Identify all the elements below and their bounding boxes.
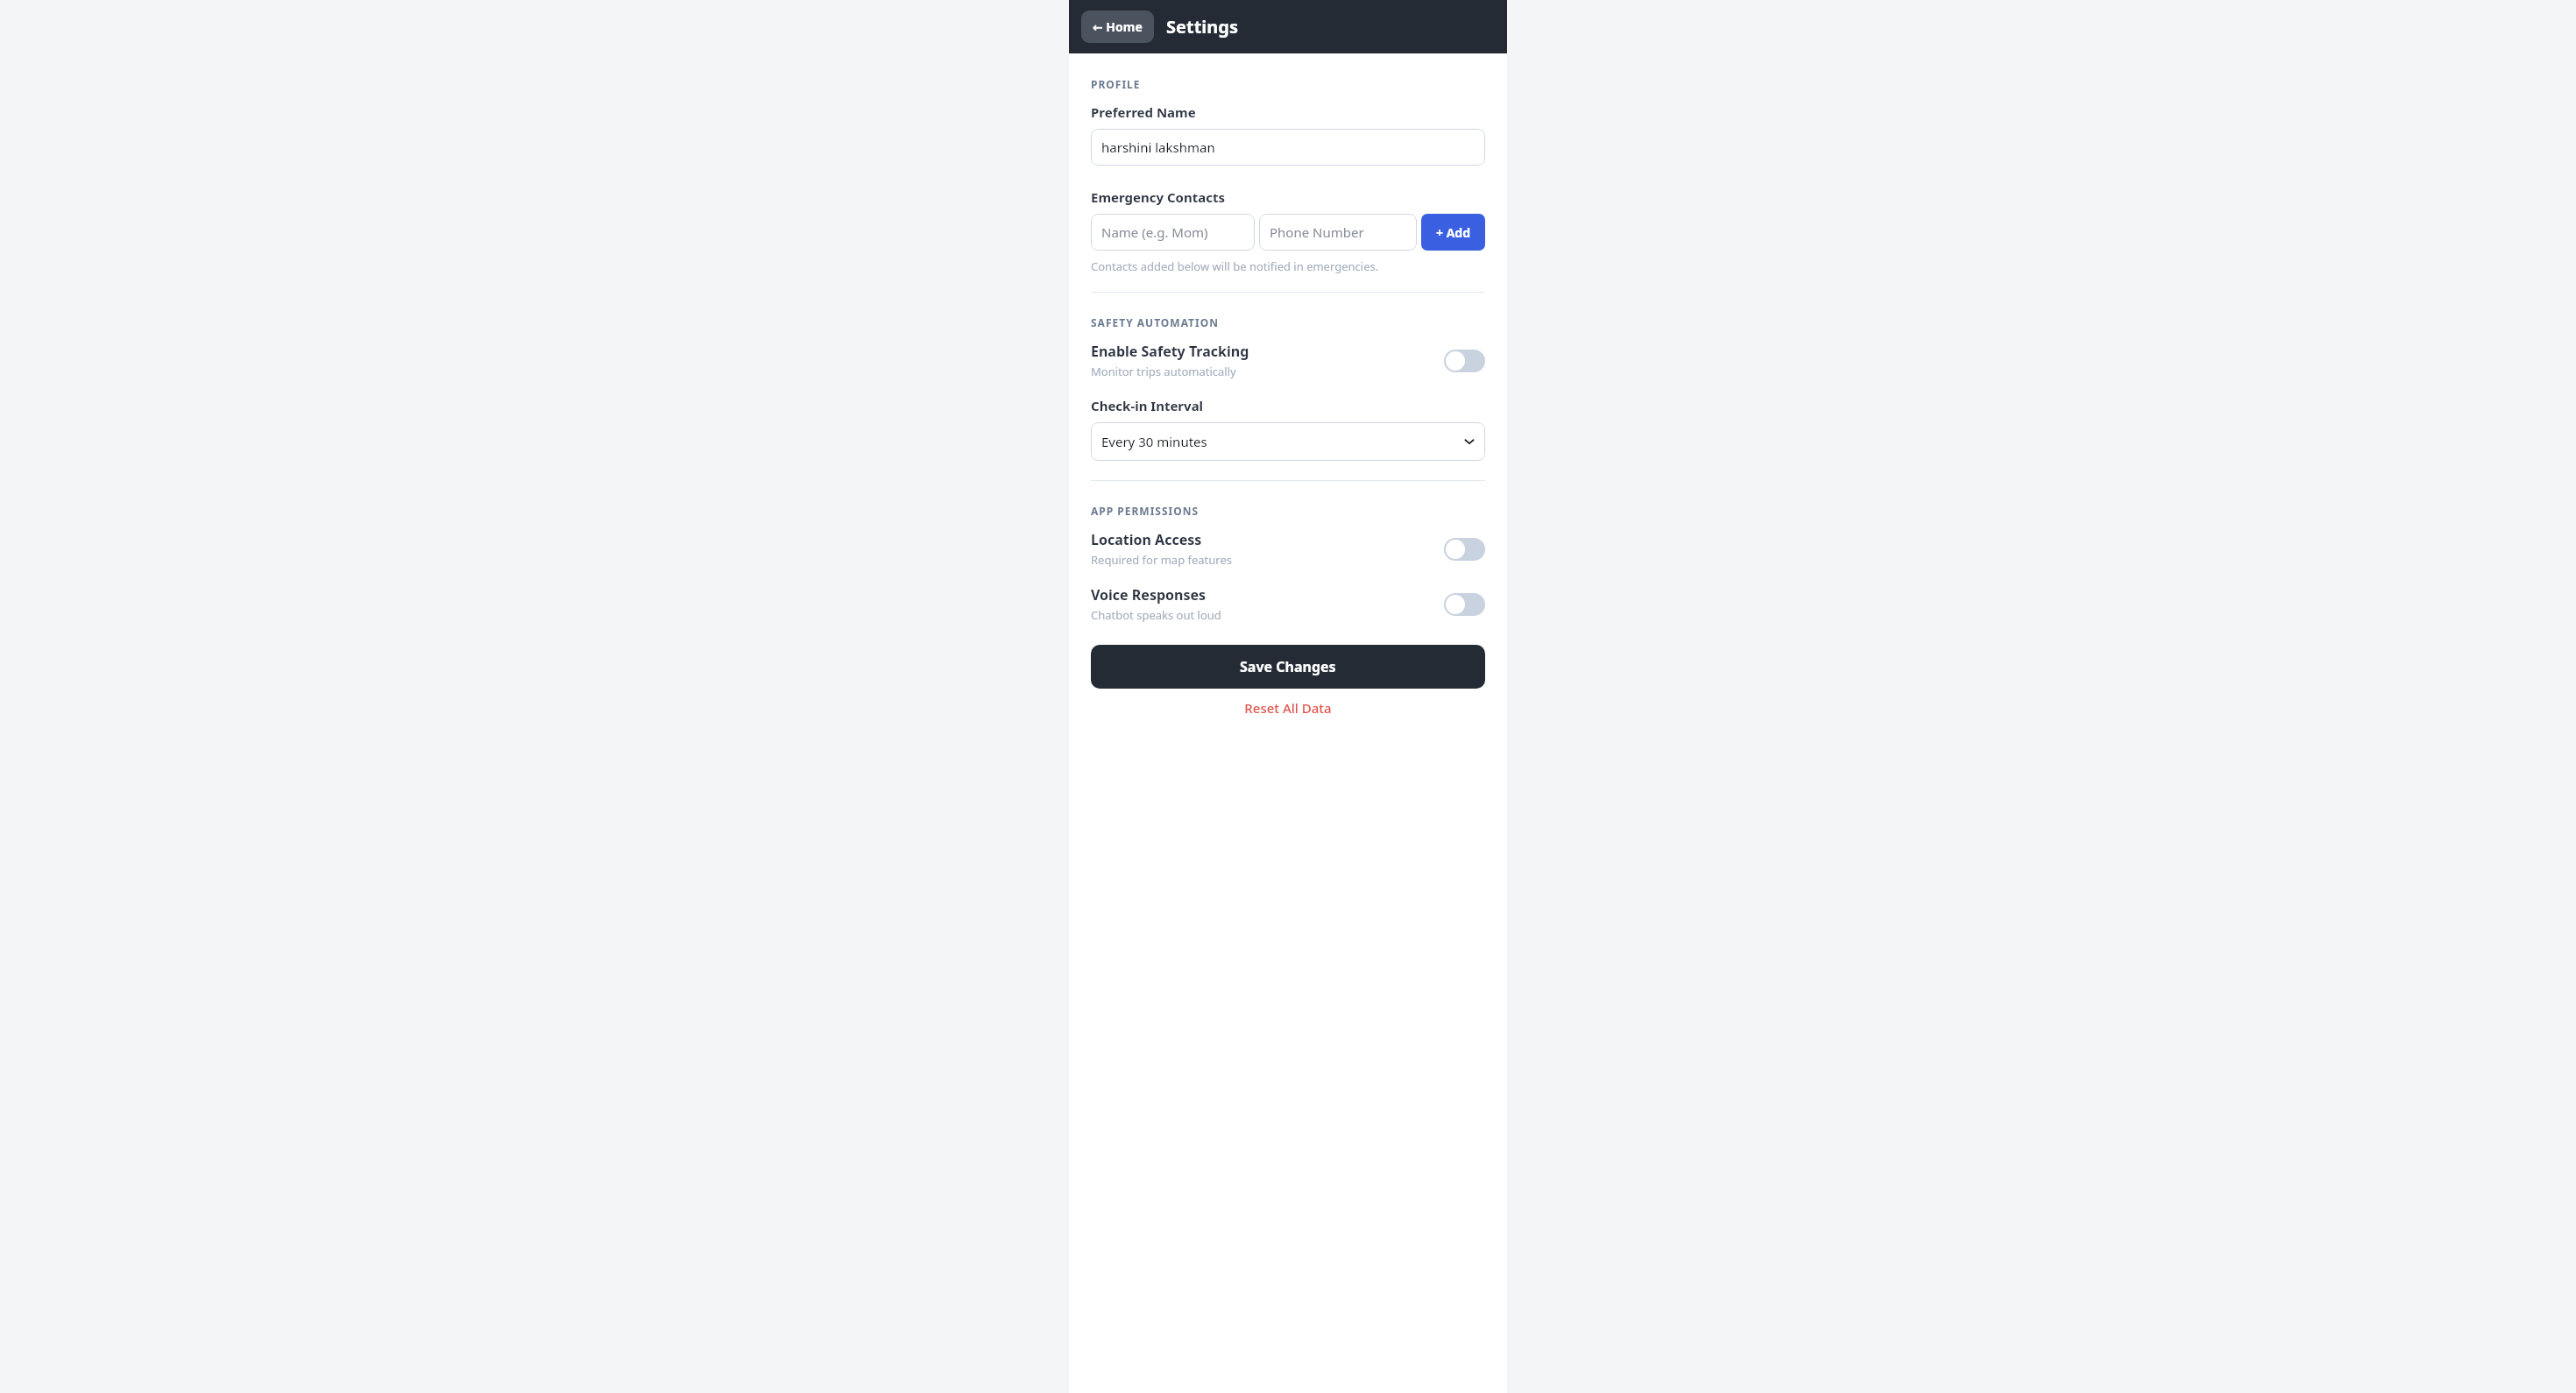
staticText: harshini lakshman — [1101, 138, 1215, 156]
other: Open interval options — [1464, 436, 1475, 447]
button[interactable]: Enable Safety Tracking — [1091, 342, 1485, 379]
staticText: Monitor trips automatically — [1091, 364, 1236, 379]
staticText: Contacts added below will be notified in… — [1091, 258, 1379, 274]
button[interactable]: ← Home — [1081, 11, 1154, 43]
staticText: Reset All Data — [1244, 699, 1332, 717]
staticText: ← Home — [1093, 18, 1143, 35]
button[interactable]: Toggle setting — [1444, 350, 1485, 372]
staticText: Save Changes — [1240, 657, 1336, 676]
button[interactable]: Save Changes — [1091, 645, 1485, 689]
staticText: Chatbot speaks out loud — [1091, 607, 1221, 623]
button[interactable]: Name (e.g. Mom) — [1091, 214, 1255, 251]
button[interactable]: Voice Responses — [1091, 585, 1485, 623]
staticText: Check-in Interval — [1091, 397, 1204, 414]
staticText: Every 30 minutes — [1101, 433, 1207, 450]
staticText: Location Access — [1091, 530, 1202, 549]
staticText: Name (e.g. Mom) — [1101, 223, 1208, 241]
staticText: Required for map features — [1091, 552, 1233, 568]
button[interactable]: Every 30 minutes — [1091, 422, 1485, 461]
staticText: Emergency Contacts — [1091, 188, 1225, 206]
staticText: Voice Responses — [1091, 585, 1207, 605]
staticText: SAFETY AUTOMATION — [1091, 315, 1219, 329]
button[interactable]: + Add — [1421, 214, 1485, 251]
button[interactable]: Location Access — [1091, 530, 1485, 568]
staticText: APP PERMISSIONS — [1091, 504, 1200, 518]
button[interactable]: Toggle setting — [1444, 538, 1485, 561]
button[interactable]: Toggle setting — [1444, 593, 1485, 616]
staticText: Enable Safety Tracking — [1091, 342, 1249, 361]
button[interactable]: Phone Number — [1259, 214, 1417, 251]
staticText: Phone Number — [1270, 223, 1364, 241]
staticText: Preferred Name — [1091, 103, 1196, 121]
staticText: + Add — [1436, 224, 1471, 241]
staticText: Settings — [1166, 15, 1238, 39]
staticText: PROFILE — [1091, 77, 1141, 91]
button[interactable]: harshini lakshman — [1091, 129, 1485, 166]
button[interactable]: Reset All Data — [1091, 699, 1485, 717]
